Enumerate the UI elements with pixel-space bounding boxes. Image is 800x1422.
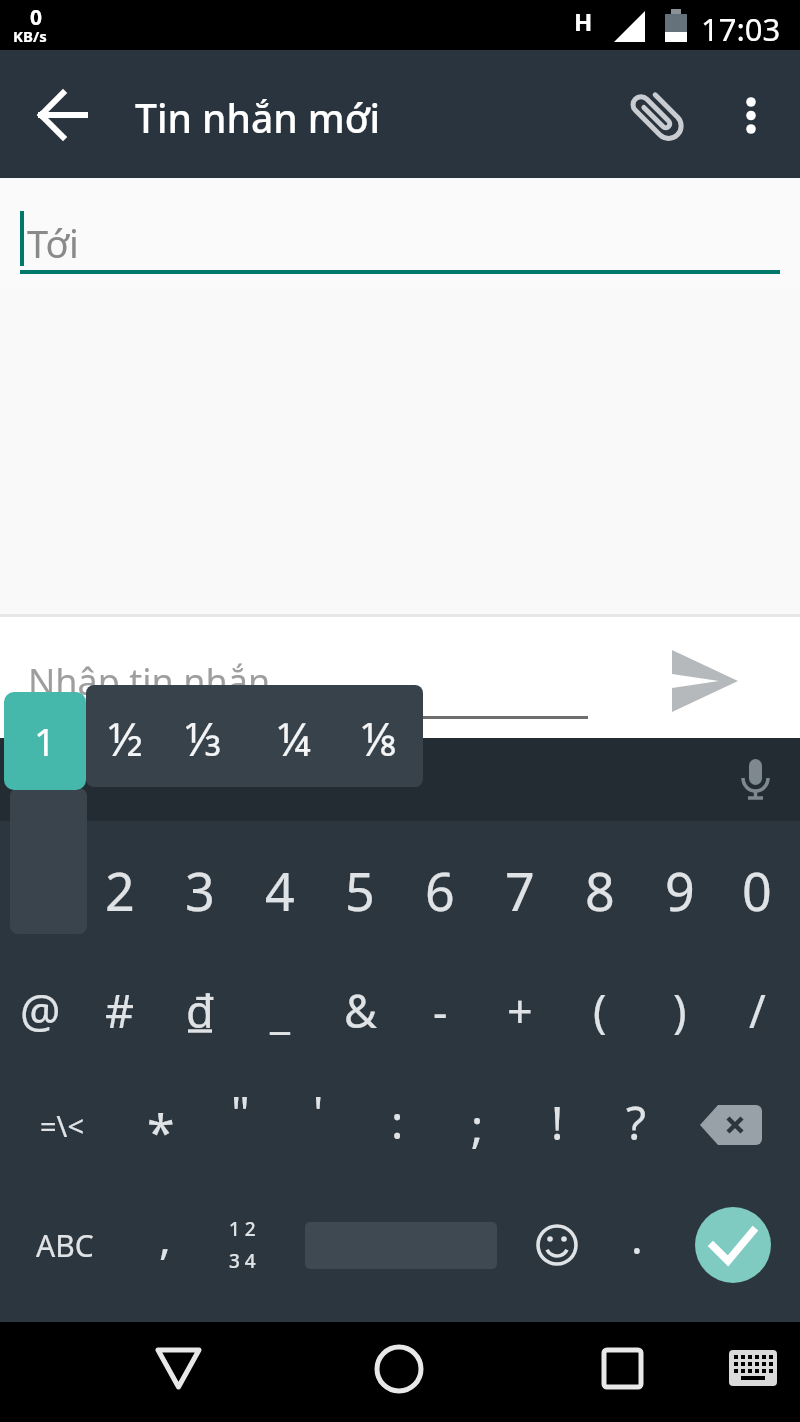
- staticText: 9: [665, 855, 695, 926]
- staticText: Nhập tin nhắn: [28, 657, 271, 706]
- button[interactable]: [695, 1207, 771, 1283]
- button[interactable]: ?: [598, 1072, 674, 1172]
- button[interactable]: [726, 86, 776, 144]
- staticText: /: [749, 980, 766, 1041]
- button[interactable]: ": [202, 1062, 278, 1162]
- button[interactable]: /: [719, 960, 795, 1060]
- button[interactable]: *: [123, 1082, 199, 1182]
- staticText: ABC: [36, 1225, 94, 1266]
- staticText: ,: [159, 1207, 171, 1267]
- staticText: _: [270, 980, 290, 1041]
- staticText: 5: [345, 855, 375, 926]
- staticText: 2: [105, 855, 135, 926]
- button[interactable]: [590, 1336, 654, 1400]
- staticText: 4: [265, 855, 295, 926]
- button[interactable]: 2: [82, 840, 158, 940]
- button[interactable]: _: [242, 960, 318, 1060]
- button[interactable]: ,: [127, 1187, 203, 1287]
- staticText: .: [631, 1207, 643, 1267]
- staticText: #: [105, 980, 135, 1041]
- staticText: @: [20, 980, 61, 1041]
- staticText: :: [391, 1090, 404, 1153]
- staticText: ): [673, 980, 687, 1041]
- button[interactable]: 5: [322, 840, 398, 940]
- button[interactable]: ): [642, 960, 718, 1060]
- button[interactable]: @: [2, 960, 78, 1060]
- button[interactable]: &: [322, 960, 398, 1060]
- button[interactable]: [722, 1340, 784, 1396]
- button[interactable]: !: [519, 1072, 595, 1172]
- staticText: *: [147, 1098, 175, 1166]
- staticText: +: [507, 980, 533, 1041]
- staticText: ¼: [277, 708, 311, 769]
- staticText: 1 2: [229, 1216, 256, 1242]
- button[interactable]: (: [562, 960, 638, 1060]
- staticText: 3 4: [229, 1248, 256, 1274]
- staticText: 0: [742, 855, 772, 926]
- button[interactable]: [0, 617, 800, 738]
- staticText: 3: [185, 855, 215, 926]
- staticText: !: [551, 1091, 564, 1154]
- button[interactable]: -: [402, 960, 478, 1060]
- staticText: KB/s: [13, 26, 47, 46]
- button[interactable]: ⅛: [342, 688, 418, 788]
- button[interactable]: đ: [162, 960, 238, 1060]
- staticText: ': [313, 1081, 324, 1144]
- button[interactable]: [618, 78, 698, 154]
- staticText: =\<: [40, 1106, 84, 1145]
- staticText: 0: [30, 3, 43, 32]
- button[interactable]: 1 2: [210, 1216, 274, 1274]
- button[interactable]: 4: [242, 840, 318, 940]
- button[interactable]: [0, 178, 800, 288]
- staticText: ": [231, 1081, 250, 1144]
- button[interactable]: ;: [439, 1075, 515, 1175]
- staticText: Tin nhắn mới: [135, 91, 381, 144]
- button[interactable]: ½: [87, 688, 163, 788]
- staticText: 8: [585, 855, 615, 926]
- staticText: ⅛: [361, 708, 399, 769]
- button[interactable]: 9: [642, 840, 718, 940]
- button[interactable]: [725, 751, 785, 811]
- button[interactable]: 7: [482, 840, 558, 940]
- staticText: ½: [108, 708, 143, 769]
- button[interactable]: =\<: [7, 1075, 117, 1175]
- button[interactable]: .: [599, 1187, 675, 1287]
- staticText: ;: [471, 1094, 484, 1157]
- staticText: H: [574, 5, 593, 38]
- staticText: 1: [34, 715, 56, 767]
- staticText: 17:03: [701, 8, 781, 50]
- staticText: ⅓: [185, 708, 223, 769]
- button[interactable]: [367, 1336, 431, 1400]
- staticText: &: [344, 980, 377, 1041]
- button[interactable]: [146, 1336, 210, 1400]
- button[interactable]: 6: [402, 840, 478, 940]
- staticText: ?: [626, 1091, 646, 1154]
- button[interactable]: ¼: [256, 688, 332, 788]
- button[interactable]: +: [482, 960, 558, 1060]
- button[interactable]: 0: [719, 840, 795, 940]
- staticText: -: [433, 980, 448, 1041]
- button[interactable]: [696, 1095, 774, 1155]
- staticText: (: [593, 980, 607, 1041]
- staticText: đ: [186, 980, 214, 1041]
- button[interactable]: #: [82, 960, 158, 1060]
- button[interactable]: [527, 1215, 587, 1275]
- staticText: 6: [425, 855, 455, 926]
- button[interactable]: 3: [162, 840, 238, 940]
- button[interactable]: 1: [4, 692, 86, 790]
- button[interactable]: [660, 640, 752, 722]
- button[interactable]: [30, 83, 94, 147]
- button[interactable]: ': [280, 1062, 356, 1162]
- button[interactable]: :: [359, 1071, 435, 1171]
- button[interactable]: ⅓: [166, 688, 242, 788]
- button[interactable]: 8: [562, 840, 638, 940]
- staticText: 7: [505, 855, 535, 926]
- staticText: Tới: [27, 217, 79, 269]
- button[interactable]: ABC: [10, 1195, 120, 1295]
